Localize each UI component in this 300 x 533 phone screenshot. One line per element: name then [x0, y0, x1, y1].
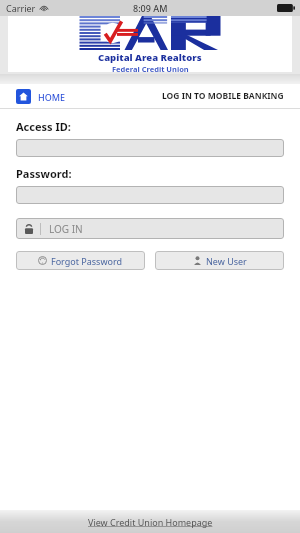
button[interactable]: View Credit Union Homepage — [0, 510, 300, 533]
staticText: HOME — [38, 91, 66, 103]
button[interactable]: Forgot Password — [16, 251, 145, 270]
button[interactable]: LOG IN — [16, 218, 284, 239]
staticText: LOG IN TO MOBILE BANKING — [162, 90, 284, 102]
button[interactable]: HOME — [16, 87, 66, 106]
button[interactable] — [16, 139, 284, 157]
staticText: New User — [206, 255, 247, 267]
staticText: Federal Credit Union — [112, 64, 189, 72]
staticText: View Credit Union Homepage — [88, 516, 213, 528]
button[interactable] — [16, 186, 284, 204]
staticText: Access ID: — [16, 119, 71, 134]
staticText: LOG IN — [49, 222, 83, 236]
staticText: 8:09 AM — [133, 2, 168, 14]
staticText: Forgot Password — [51, 255, 123, 267]
staticText: Carrier — [6, 2, 36, 14]
staticText: Password: — [16, 166, 72, 181]
staticText: Capital Area Realtors — [98, 51, 202, 64]
button[interactable]: New User — [155, 251, 284, 270]
